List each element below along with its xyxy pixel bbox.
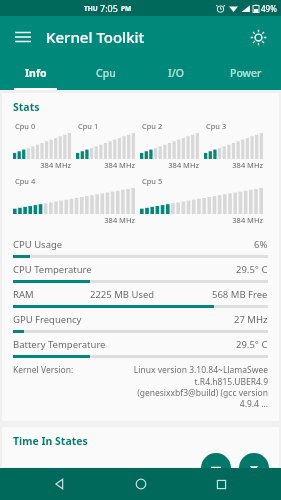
- staticText: Battery Temperature: [13, 338, 106, 351]
- button[interactable]: Back: [40, 468, 80, 500]
- button[interactable]: Brightness: [244, 23, 272, 51]
- button[interactable]: GPU Frequency: [13, 308, 268, 333]
- staticText: 384 MHz: [204, 160, 263, 170]
- staticText: CPU Usage: [13, 238, 63, 251]
- button[interactable]: Save: [239, 453, 269, 483]
- staticText: I/O: [168, 66, 184, 80]
- button[interactable]: Power: [211, 58, 281, 88]
- button[interactable]: Open navigation menu: [9, 23, 37, 51]
- button[interactable]: Battery Temperature: [13, 333, 268, 358]
- button[interactable]: Info: [0, 58, 71, 88]
- staticText: Cpu 5: [142, 176, 163, 186]
- staticText: Cpu 0: [15, 121, 36, 131]
- staticText: Linux version 3.10.84~LlamaSweet.R4.h815…: [132, 364, 268, 410]
- staticText: Cpu: [96, 66, 116, 80]
- staticText: 568 MB Free: [212, 288, 268, 301]
- staticText: Time In States: [13, 434, 88, 448]
- button[interactable]: CPU Usage: [13, 233, 268, 258]
- button[interactable]: Recent apps: [201, 468, 241, 500]
- staticText: 6%: [254, 238, 268, 251]
- staticText: 384 MHz: [140, 215, 263, 225]
- staticText: 384 MHz: [13, 215, 135, 225]
- button[interactable]: Cpu: [71, 58, 141, 88]
- staticText: 49%: [261, 3, 277, 14]
- button[interactable]: RAM: [13, 283, 268, 308]
- staticText: Cpu 1: [78, 121, 99, 131]
- staticText: 2225 MB Used: [90, 288, 155, 301]
- staticText: Cpu 2: [142, 121, 163, 131]
- button[interactable]: Kernel Version:: [13, 364, 268, 410]
- button[interactable]: CPU Temperature: [13, 258, 268, 283]
- staticText: 384 MHz: [13, 160, 71, 170]
- staticText: Info: [25, 66, 47, 80]
- staticText: 29.5° C: [236, 338, 268, 351]
- staticText: 29.5° C: [236, 263, 268, 276]
- staticText: THU: [84, 4, 100, 13]
- staticText: 27 MHz: [234, 313, 268, 326]
- button[interactable]: Refresh: [201, 453, 231, 483]
- staticText: PM: [121, 4, 132, 13]
- staticText: 384 MHz: [140, 160, 199, 170]
- staticText: 7:05: [100, 2, 121, 14]
- button[interactable]: Home: [121, 468, 161, 500]
- staticText: Cpu 4: [15, 176, 36, 186]
- staticText: 384 MHz: [76, 160, 135, 170]
- staticText: Power: [230, 66, 262, 80]
- staticText: RAM: [13, 288, 34, 301]
- staticText: Stats: [13, 100, 40, 114]
- staticText: Kernel Toolkit: [46, 27, 145, 47]
- button[interactable]: I/O: [141, 58, 211, 88]
- staticText: Kernel Version:: [13, 364, 74, 376]
- staticText: GPU Frequency: [13, 313, 82, 326]
- staticText: Cpu 3: [206, 121, 227, 131]
- staticText: CPU Temperature: [13, 263, 92, 276]
